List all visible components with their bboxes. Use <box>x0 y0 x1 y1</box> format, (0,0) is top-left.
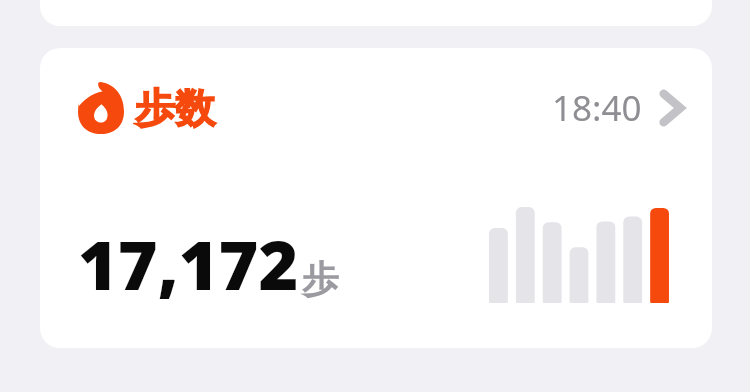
staticText: 18:40 <box>552 84 642 132</box>
staticText: 17,172 <box>78 217 299 310</box>
button[interactable]: 18:40 <box>552 84 686 132</box>
staticText: 歩数 <box>135 83 215 133</box>
other: Open details <box>658 91 686 125</box>
staticText: 歩 <box>302 256 339 303</box>
other: Steps <box>78 82 124 134</box>
button[interactable]: Steps <box>40 48 712 348</box>
